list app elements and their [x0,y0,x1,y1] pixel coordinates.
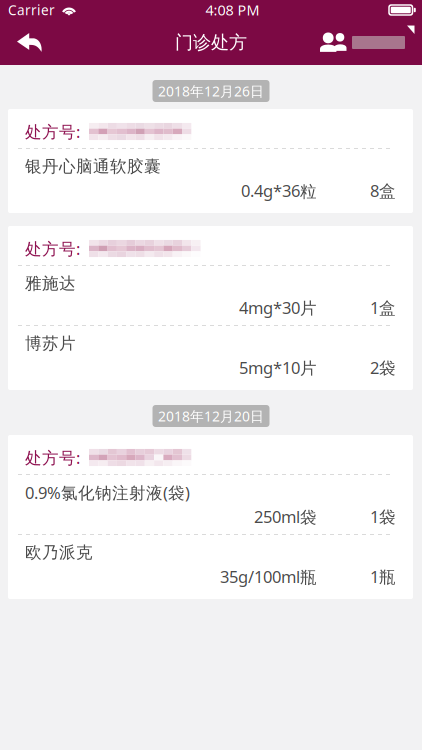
staticText: 处方号: [25,120,80,143]
staticText: 250ml袋 [254,505,317,528]
staticText: 处方号: [25,237,80,260]
staticText: 雅施达 [25,273,76,294]
staticText: 1盒 [370,296,396,319]
staticText: 4:08 PM [205,0,259,20]
button[interactable]: Back [0,21,56,64]
staticText: 35g/100ml瓶 [220,565,317,588]
staticText: 4mg*30片 [239,296,317,319]
staticText: 0.4g*36粒 [241,179,317,202]
staticText: 1袋 [370,505,396,528]
staticText: 2袋 [370,356,396,379]
staticText: 处方号: [25,446,80,469]
button[interactable]: Patient [320,20,422,64]
staticText: 1瓶 [370,565,396,588]
staticText: 博苏片 [25,333,76,354]
staticText: 8盒 [370,179,396,202]
staticText: 银丹心脑通软胶囊 [25,156,161,177]
staticText: 门诊处方 [175,31,247,54]
staticText: 5mg*10片 [239,356,317,379]
staticText: Carrier [8,1,55,19]
staticText: 2018年12月20日 [158,407,264,425]
staticText: 欧乃派克 [25,542,93,563]
staticText: 2018年12月26日 [158,82,264,100]
staticText: 0.9%氯化钠注射液(袋) [25,481,190,504]
